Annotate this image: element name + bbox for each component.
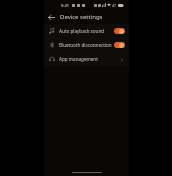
staticText: Device settings	[60, 13, 103, 21]
button[interactable]: Back	[44, 10, 58, 24]
staticText: 47	[112, 3, 117, 8]
button[interactable]: Auto playback sound	[44, 24, 129, 38]
button[interactable]: Toggle on	[114, 42, 125, 48]
button[interactable]: Bluetooth disconnection reminder	[44, 38, 129, 52]
other: Open	[118, 56, 125, 63]
staticText: App management	[59, 56, 116, 62]
staticText: 9:41	[61, 3, 69, 8]
button[interactable]: App management	[44, 52, 129, 66]
button[interactable]: Toggle on	[114, 28, 125, 34]
staticText: Auto playback sound	[59, 28, 112, 34]
staticText: Bluetooth disconnection reminder	[59, 42, 112, 48]
